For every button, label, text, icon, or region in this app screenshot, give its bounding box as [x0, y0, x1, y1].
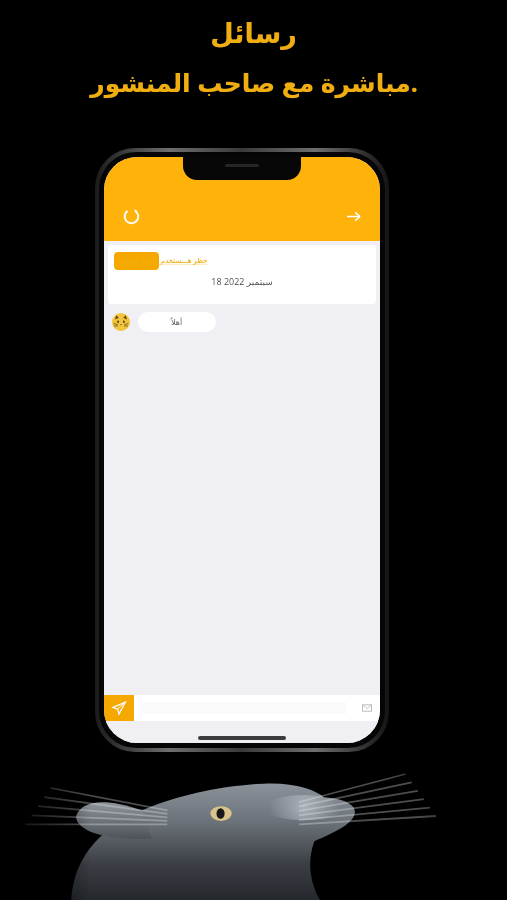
button[interactable]: Send	[104, 695, 134, 721]
staticText: أهلاً	[171, 318, 183, 327]
staticText: مباشرة مع صاحب المنشور.	[90, 65, 418, 99]
button[interactable]: Refresh	[114, 199, 148, 233]
button[interactable]: أهلاً	[112, 312, 380, 332]
staticText: رسائل	[210, 18, 297, 49]
button[interactable]: قط للتبني	[114, 252, 159, 270]
staticText: حظر هـــستخدم	[159, 256, 208, 266]
button[interactable]: قط للتبني	[108, 245, 376, 304]
staticText: 18 سبتمبر 2022	[211, 275, 273, 287]
button[interactable]: Back	[336, 199, 370, 233]
button[interactable]: Attach	[354, 695, 380, 721]
staticText: قط للتبني	[122, 256, 151, 266]
